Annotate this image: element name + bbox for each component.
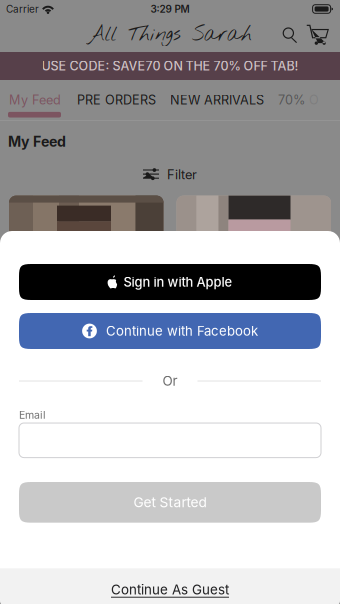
button[interactable]: Shopping cart xyxy=(303,20,333,50)
staticText: My Feed xyxy=(8,133,66,150)
button[interactable]: Search xyxy=(277,20,303,50)
staticText: O xyxy=(305,92,319,108)
staticText: Or xyxy=(162,373,177,389)
button[interactable]: My Feed xyxy=(0,84,70,116)
staticText: My Feed xyxy=(9,92,61,108)
staticText: Filter xyxy=(167,167,197,182)
staticText: 70% xyxy=(278,92,305,108)
button[interactable]: Filter xyxy=(143,163,197,187)
button[interactable]: PRE ORDERS xyxy=(70,84,163,116)
staticText: PRE ORDERS xyxy=(77,92,156,108)
staticText: Get Started xyxy=(133,494,206,511)
staticText: All Things Sarah xyxy=(88,22,252,48)
button[interactable]: Get Started xyxy=(19,482,321,523)
button[interactable]: 70% xyxy=(271,84,340,116)
staticText: Email xyxy=(19,409,46,421)
staticText: 3:29 PM xyxy=(150,3,189,15)
button[interactable]: USE CODE: SAVE70 ON THE 70% OFF TAB! xyxy=(0,52,340,80)
button[interactable]: Continue with Facebook xyxy=(19,313,321,349)
staticText: NEW ARRIVALS xyxy=(170,92,264,108)
staticText: Continue As Guest xyxy=(111,582,229,598)
button[interactable]: NEW ARRIVALS xyxy=(163,84,271,116)
staticText: USE CODE: SAVE70 ON THE 70% OFF TAB! xyxy=(41,58,298,74)
staticText: Sign in with Apple xyxy=(123,274,232,290)
button[interactable]: Sign in with Apple xyxy=(19,264,321,300)
button[interactable]: Continue As Guest xyxy=(0,568,340,604)
staticText: Carrier xyxy=(6,3,39,15)
staticText: Continue with Facebook xyxy=(106,323,258,339)
